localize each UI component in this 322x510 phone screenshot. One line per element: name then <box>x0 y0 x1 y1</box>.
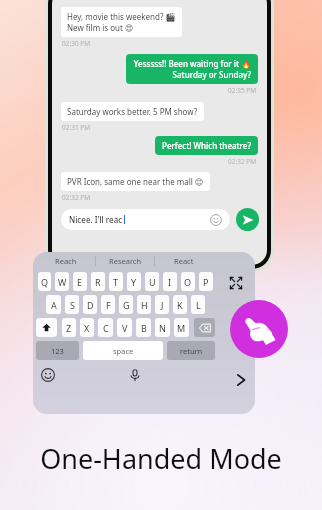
staticText: Saturday works better. 5 PM show? <box>67 106 198 117</box>
staticText: Research <box>109 256 142 266</box>
staticText: A <box>51 299 57 311</box>
staticText: H <box>141 299 148 311</box>
staticText: B <box>141 322 147 334</box>
staticText: S <box>70 299 75 311</box>
button[interactable]: T <box>109 272 123 291</box>
button[interactable]: Emoji <box>210 214 222 226</box>
button[interactable]: React <box>155 252 213 270</box>
staticText: C <box>103 322 109 334</box>
staticText: R <box>95 276 101 288</box>
staticText: return <box>180 346 203 356</box>
button[interactable]: E <box>73 272 87 291</box>
staticText: M <box>177 322 186 334</box>
staticText: J <box>161 299 164 311</box>
button[interactable]: M <box>174 318 189 337</box>
button[interactable]: H <box>137 295 151 314</box>
staticText: Q <box>41 276 49 288</box>
staticText: D <box>87 299 94 311</box>
button[interactable]: P <box>199 272 213 291</box>
button[interactable]: Nicee. I'll reac <box>61 209 230 230</box>
button[interactable]: W <box>55 272 69 291</box>
staticText: 02:32 PM <box>228 157 257 166</box>
button[interactable]: C <box>98 318 113 337</box>
staticText: O <box>184 276 192 288</box>
button[interactable]: N <box>155 318 170 337</box>
button[interactable]: V <box>117 318 132 337</box>
button[interactable]: L <box>191 295 205 314</box>
staticText: 02:32 PM <box>62 193 91 202</box>
button[interactable]: K <box>173 295 187 314</box>
button[interactable]: 123 <box>36 341 79 360</box>
button[interactable]: X <box>80 318 94 337</box>
staticText: U <box>149 276 156 288</box>
staticText: space <box>113 346 134 356</box>
button[interactable]: Saturday works better. 5 PM show? <box>61 102 204 121</box>
staticText: E <box>77 276 83 288</box>
staticText: X <box>84 322 90 334</box>
staticText: Nicee. I'll reac <box>69 214 123 225</box>
button[interactable]: I <box>163 272 177 291</box>
button[interactable]: Emoji keyboard <box>41 368 55 382</box>
button[interactable]: Research <box>96 252 154 270</box>
button[interactable]: Backspace <box>194 318 215 337</box>
button[interactable]: Hey, movie this weekend? 🎬 <box>61 7 182 37</box>
button[interactable]: R <box>91 272 105 291</box>
button[interactable]: Send <box>236 208 259 231</box>
button[interactable]: Yesssss!! Been waiting for it 🔥 <box>126 54 258 84</box>
staticText: PVR Icon, same one near the mall 😊 <box>67 176 204 187</box>
staticText: K <box>177 299 183 311</box>
button[interactable]: Y <box>127 272 141 291</box>
staticText: Reach <box>55 256 77 266</box>
staticText: W <box>58 276 67 288</box>
staticText: P <box>203 276 209 288</box>
staticText: One-Handed Mode <box>0 440 322 477</box>
staticText: Y <box>131 276 137 288</box>
staticText: Saturday or Sunday? <box>172 69 251 80</box>
staticText: N <box>159 322 166 334</box>
button[interactable]: U <box>145 272 159 291</box>
staticText: Hey, movie this weekend? 🎬 <box>67 11 176 22</box>
button[interactable]: Perfect! Which theatre? <box>155 136 258 155</box>
button[interactable]: Shift <box>36 318 57 337</box>
staticText: Z <box>66 322 72 334</box>
button[interactable]: PVR Icon, same one near the mall 😊 <box>61 172 210 191</box>
staticText: New film is out 😍 <box>67 22 134 33</box>
staticText: L <box>196 299 201 311</box>
button[interactable]: Z <box>62 318 76 337</box>
staticText: 02:35 PM <box>228 86 257 95</box>
button[interactable]: space <box>83 341 163 360</box>
button[interactable]: Voice input <box>128 368 142 382</box>
staticText: T <box>113 276 119 288</box>
staticText: V <box>122 322 128 334</box>
staticText: 02:30 PM <box>62 39 91 48</box>
button[interactable]: B <box>136 318 151 337</box>
staticText: Perfect! Which theatre? <box>162 140 251 151</box>
button[interactable]: G <box>119 295 133 314</box>
button[interactable]: Expand keyboard <box>229 276 243 290</box>
staticText: Yesssss!! Been waiting for it 🔥 <box>133 58 251 69</box>
button[interactable]: J <box>155 295 169 314</box>
staticText: 02:31 PM <box>62 123 91 132</box>
button[interactable]: S <box>65 295 79 314</box>
button[interactable]: Reach <box>37 252 95 270</box>
button[interactable]: F <box>101 295 115 314</box>
button[interactable]: return <box>167 341 215 360</box>
staticText: I <box>168 276 172 288</box>
staticText: G <box>123 299 130 311</box>
staticText: React <box>174 256 194 266</box>
button[interactable]: D <box>83 295 97 314</box>
staticText: F <box>106 299 111 311</box>
button[interactable]: Tap gesture <box>230 300 288 358</box>
button[interactable]: O <box>181 272 195 291</box>
button[interactable]: Switch side <box>233 372 249 388</box>
staticText: 123 <box>51 346 64 356</box>
button[interactable]: Q <box>38 272 51 291</box>
button[interactable]: A <box>46 295 61 314</box>
